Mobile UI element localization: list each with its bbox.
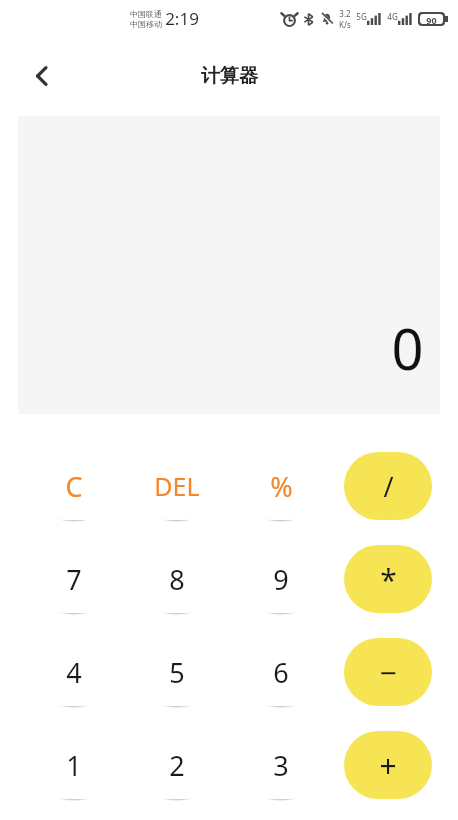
button[interactable]: 9 bbox=[237, 545, 325, 613]
button[interactable]: 1 bbox=[30, 731, 118, 799]
staticText: 8 bbox=[169, 561, 185, 598]
staticText: 中国联通 bbox=[130, 9, 162, 19]
button[interactable]: − bbox=[344, 638, 432, 706]
staticText: + bbox=[379, 745, 397, 786]
button[interactable]: 3 bbox=[237, 731, 325, 799]
staticText: 5 bbox=[169, 654, 185, 691]
button[interactable]: DEL bbox=[133, 452, 221, 520]
staticText: 0 bbox=[391, 310, 424, 386]
staticText: 6 bbox=[273, 654, 289, 691]
staticText: 7 bbox=[66, 561, 82, 598]
staticText: 3 bbox=[273, 747, 289, 784]
button[interactable]: + bbox=[344, 731, 432, 799]
staticText: 3.2 bbox=[339, 8, 351, 19]
button[interactable]: 6 bbox=[237, 638, 325, 706]
staticText: K/s bbox=[339, 19, 351, 30]
staticText: 计算器 bbox=[201, 64, 258, 88]
button[interactable]: % bbox=[237, 452, 325, 520]
staticText: / bbox=[383, 468, 394, 505]
staticText: 5G bbox=[356, 11, 367, 22]
staticText: DEL bbox=[154, 469, 200, 503]
button[interactable]: 4 bbox=[30, 638, 118, 706]
staticText: 1 bbox=[66, 747, 82, 784]
button[interactable]: / bbox=[344, 452, 432, 520]
staticText: 2 bbox=[169, 747, 185, 784]
button[interactable]: Back bbox=[18, 52, 66, 100]
staticText: 4 bbox=[66, 654, 82, 691]
staticText: * bbox=[380, 559, 397, 600]
staticText: 9 bbox=[273, 561, 289, 598]
button[interactable]: * bbox=[344, 545, 432, 613]
button[interactable]: 8 bbox=[133, 545, 221, 613]
button[interactable]: 2 bbox=[133, 731, 221, 799]
staticText: 4G bbox=[387, 11, 398, 22]
staticText: 2:19 bbox=[165, 7, 199, 30]
button[interactable]: 7 bbox=[30, 545, 118, 613]
staticText: − bbox=[379, 652, 397, 693]
button[interactable]: 5 bbox=[133, 638, 221, 706]
staticText: 中国移动 bbox=[130, 19, 162, 29]
staticText: C bbox=[65, 468, 83, 505]
staticText: % bbox=[270, 468, 293, 505]
button[interactable]: C bbox=[30, 452, 118, 520]
staticText: 90 bbox=[426, 14, 437, 24]
